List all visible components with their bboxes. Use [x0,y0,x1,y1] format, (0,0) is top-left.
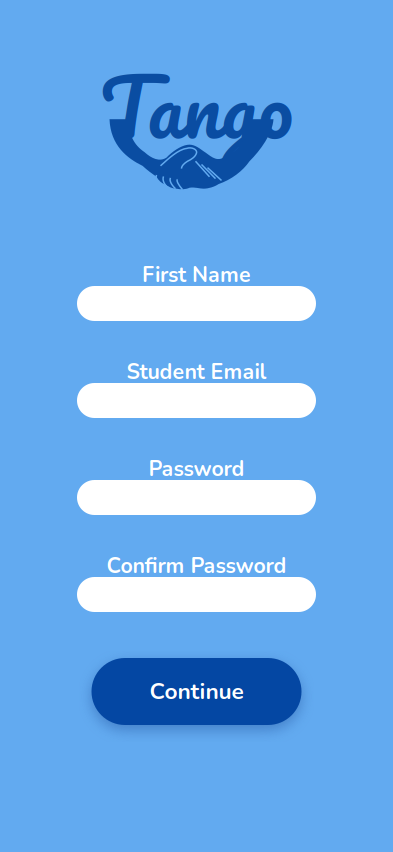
button[interactable]: Continue [91,658,301,725]
staticText: Student Email [126,357,266,387]
staticText: First Name [142,260,251,290]
button[interactable] [77,480,316,515]
button[interactable] [77,577,316,612]
button[interactable] [77,286,316,321]
staticText: Password [148,454,244,484]
button[interactable] [77,383,316,418]
staticText: Tango [100,38,293,174]
staticText: Continue [149,676,243,707]
staticText: Confirm Password [106,551,286,581]
